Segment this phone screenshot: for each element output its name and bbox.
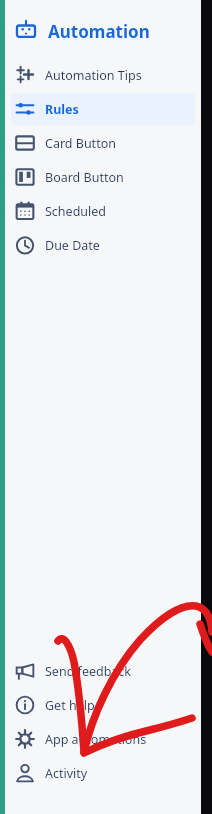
staticText: Activity [45,765,88,782]
staticText: Rules [45,101,79,118]
button[interactable]: Send feedback [11,655,195,687]
button[interactable]: Board Button [11,161,195,193]
button[interactable]: Card Button [11,127,195,159]
staticText: Card Button [45,135,116,152]
button[interactable]: Automation [14,14,201,48]
button[interactable]: Scheduled [11,195,195,227]
button[interactable]: App automations [11,723,195,755]
button[interactable]: Due Date [11,229,195,261]
staticText: Automation [48,20,150,43]
staticText: Board Button [45,169,124,186]
button[interactable]: Activity [11,757,195,789]
staticText: App automations [45,731,147,748]
button[interactable]: Get help [11,689,195,721]
button[interactable]: Rules [11,93,195,125]
staticText: Automation Tips [45,67,142,84]
staticText: Send feedback [45,663,132,680]
button[interactable]: Automation Tips [11,59,195,91]
staticText: Scheduled [45,203,107,220]
staticText: Due Date [45,237,100,254]
staticText: Get help [45,697,95,714]
